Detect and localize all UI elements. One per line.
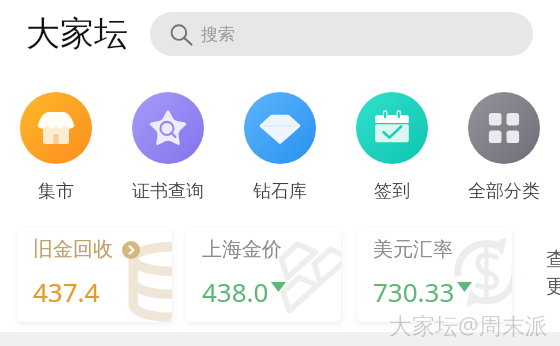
button[interactable]: 旧金回收 [17, 228, 172, 322]
staticText: 证书查询 [132, 180, 204, 203]
staticText: 签到 [374, 180, 410, 203]
button[interactable]: 上海金价 [186, 228, 341, 322]
button[interactable]: 签到 [336, 92, 448, 203]
button[interactable]: 查 [526, 228, 560, 322]
staticText: 437.4 [33, 274, 100, 309]
staticText: 大家坛@周末派 [389, 309, 548, 340]
button[interactable]: 证书查询 [112, 92, 224, 203]
button[interactable]: 集市 [0, 92, 112, 203]
staticText: 美元汇率 [373, 237, 453, 262]
staticText: 大家坛 [26, 12, 128, 55]
staticText: 更 [546, 274, 560, 299]
staticText: 查 [546, 247, 560, 272]
staticText: 搜索 [201, 24, 235, 45]
button[interactable]: 搜索 [150, 12, 533, 56]
staticText: 730.33 [373, 274, 455, 309]
staticText: 旧金回收 [33, 237, 113, 262]
button[interactable]: 钻石库 [224, 92, 336, 203]
staticText: 上海金价 [202, 237, 282, 262]
staticText: 全部分类 [468, 180, 540, 203]
staticText: 集市 [38, 180, 74, 203]
other: 更多 [122, 241, 140, 259]
button[interactable]: 全部分类 [448, 92, 560, 203]
button[interactable]: 美元汇率 [357, 228, 512, 322]
staticText: 438.0 [202, 274, 269, 309]
staticText: 钻石库 [253, 180, 307, 203]
